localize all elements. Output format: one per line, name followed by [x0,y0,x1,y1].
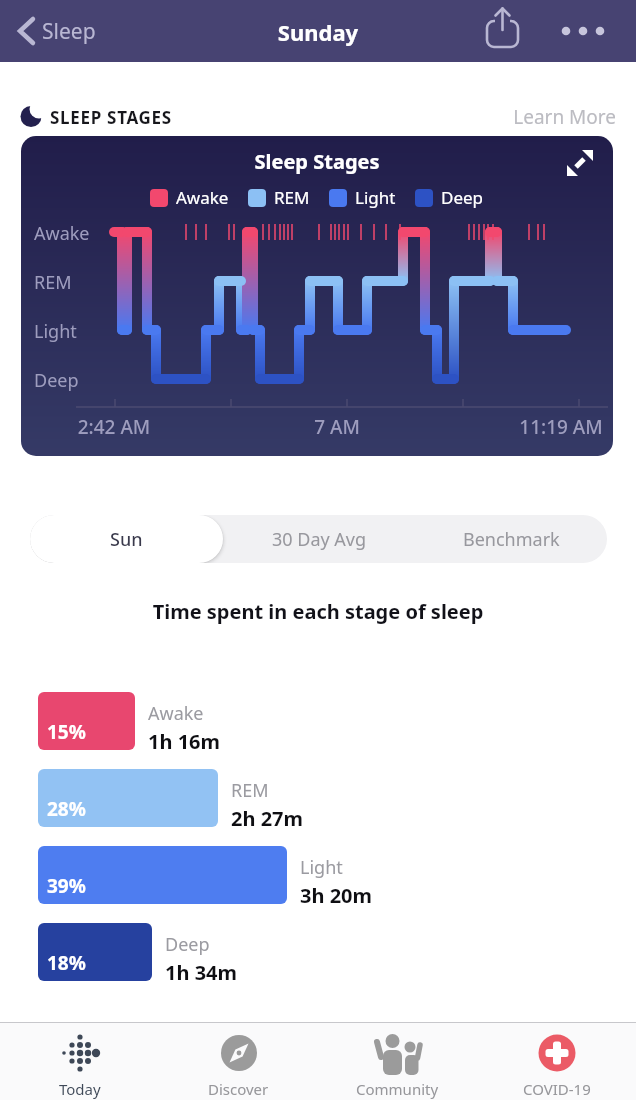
button[interactable] [478,4,528,58]
staticText: 15% [47,719,86,745]
button[interactable]: 15% [38,692,135,750]
button[interactable]: Today [0,1022,159,1100]
staticText: Deep [34,368,79,393]
staticText: Deep [441,186,484,209]
staticText: 39% [47,873,86,899]
staticText: 30 Day Avg [272,527,367,552]
staticText: REM [34,270,72,295]
staticText: Light [300,855,343,880]
staticText: Awake [148,701,204,726]
button[interactable] [556,140,606,190]
staticText: Discover [208,1079,269,1099]
staticText: 3h 20m [300,882,373,909]
button[interactable]: 28% [38,769,218,827]
staticText: Awake [34,221,90,246]
staticText: 28% [47,796,86,822]
staticText: Learn More [500,104,616,130]
staticText: SLEEP STAGES [50,106,172,129]
staticText: Benchmark [463,527,560,552]
button[interactable]: Learn More [500,100,616,132]
staticText: Awake [176,186,229,209]
staticText: 2:42 AM [59,414,169,440]
button[interactable]: Sun [30,515,223,563]
staticText: COVID-19 [523,1079,591,1099]
staticText: Sun [110,527,143,552]
staticText: Community [356,1079,439,1099]
staticText: Sleep Stages [167,148,467,175]
staticText: REM [274,186,310,209]
staticText: Sunday [218,17,418,47]
button[interactable]: Sleep [8,8,108,54]
button[interactable]: Benchmark [415,515,607,563]
button[interactable]: 30 Day Avg [223,515,415,563]
staticText: Today [59,1079,101,1099]
staticText: 18% [47,950,86,976]
staticText: Sleep [42,17,96,46]
button[interactable]: 39% [38,846,287,904]
button[interactable]: Community [318,1022,477,1100]
staticText: 1h 34m [165,959,238,986]
staticText: Light [34,319,77,344]
staticText: Deep [165,932,210,957]
staticText: 2h 27m [231,805,304,832]
staticText: Light [355,186,396,209]
button[interactable] [556,10,612,52]
button[interactable]: COVID-19 [477,1022,636,1100]
button[interactable]: 18% [38,923,152,981]
staticText: 11:19 AM [501,414,613,440]
staticText: Time spent in each stage of sleep [0,598,636,625]
staticText: 7 AM [297,414,377,440]
staticText: REM [231,778,269,803]
button[interactable]: Discover [159,1022,318,1100]
staticText: 1h 16m [148,728,221,755]
